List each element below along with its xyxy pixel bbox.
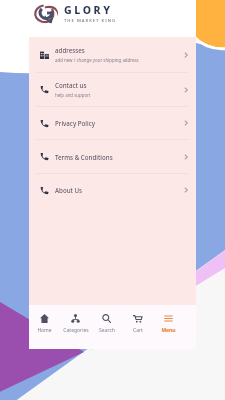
staticText: Search [99,327,115,334]
staticText: GLORY [64,3,113,17]
button[interactable]: Privacy Policy [29,107,196,139]
staticText: Categories [63,327,89,334]
button[interactable]: Terms & Conditions [29,140,196,173]
button[interactable]: Home [29,305,60,349]
staticText: add new / change your shipping address [55,57,139,63]
staticText: Contact us [55,81,87,89]
staticText: Home [37,327,52,334]
button[interactable]: addresses [29,37,196,72]
button[interactable]: Search [91,305,122,349]
staticText: About Us [55,186,83,194]
staticText: Privacy Policy [55,119,95,127]
staticText: Cart [133,327,143,334]
staticText: help and support [55,92,91,98]
button[interactable]: About Us [29,174,196,206]
staticText: Menu [161,327,176,334]
staticText: addresses [55,46,85,54]
button[interactable]: Categories [60,305,91,349]
button[interactable]: Menu [153,305,184,349]
button[interactable]: Contact us [29,73,196,106]
staticText: THE MARKET KING [64,18,116,24]
button[interactable]: Cart [122,305,153,349]
staticText: Terms & Conditions [55,153,113,161]
